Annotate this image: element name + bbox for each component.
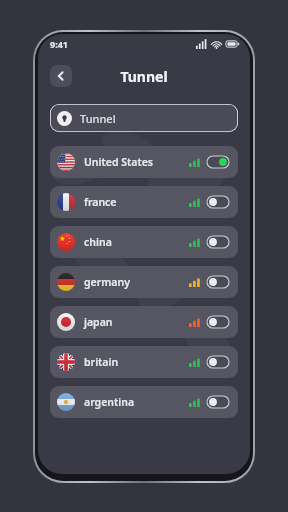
staticText: 9:41 (50, 38, 68, 50)
staticText: germany (84, 275, 130, 289)
staticText: Tunnel (120, 67, 168, 86)
staticText: china (84, 235, 112, 249)
button[interactable]: britain (50, 346, 238, 378)
staticText: argentina (84, 395, 135, 409)
staticText: britain (84, 355, 119, 369)
button[interactable]: Enable argentina (207, 396, 229, 408)
button[interactable]: Enable japan (207, 316, 229, 328)
button[interactable]: japan (50, 306, 238, 338)
button[interactable]: Enable germany (207, 276, 229, 288)
staticText: United States (84, 155, 153, 169)
button[interactable]: china (50, 226, 238, 258)
button[interactable]: Back (50, 65, 72, 87)
button[interactable]: germany (50, 266, 238, 298)
button[interactable]: Disable United States (207, 156, 229, 168)
staticText: Tunnel (80, 111, 116, 126)
button[interactable]: france (50, 186, 238, 218)
button[interactable]: United States (50, 146, 238, 178)
button[interactable]: argentina (50, 386, 238, 418)
staticText: japan (84, 315, 113, 329)
staticText: france (84, 195, 117, 209)
button[interactable]: Enable france (207, 196, 229, 208)
button[interactable]: Enable china (207, 236, 229, 248)
button[interactable]: Tunnel (50, 104, 238, 132)
button[interactable]: Enable britain (207, 356, 229, 368)
